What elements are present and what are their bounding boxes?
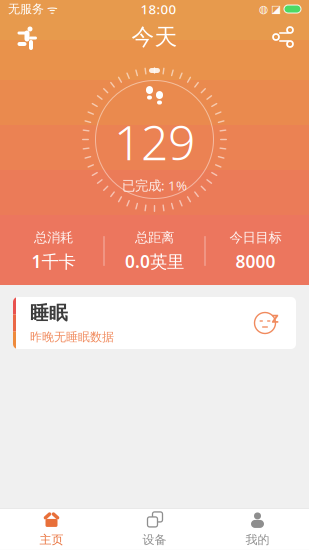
staticText: 1千卡 xyxy=(31,250,75,273)
staticText: 129 xyxy=(114,110,195,173)
staticText: 昨晚无睡眠数据 xyxy=(30,330,114,344)
staticText: z xyxy=(271,307,278,327)
button[interactable]: 我的 xyxy=(206,509,309,550)
staticText: 已完成: 1% xyxy=(122,176,187,194)
staticText: 总距离 xyxy=(135,229,174,246)
staticText: 无服务 xyxy=(8,2,44,16)
staticText: 18:00 xyxy=(140,0,176,18)
staticText: ᯤ xyxy=(44,1,58,17)
staticText: 今日目标 xyxy=(229,229,281,246)
button[interactable]: 睡眠 xyxy=(13,297,296,349)
staticText: 我的 xyxy=(245,532,269,547)
staticText: 主页 xyxy=(39,532,63,547)
button[interactable]: 分享 xyxy=(261,19,305,55)
staticText: 0.0英里 xyxy=(125,250,184,273)
button[interactable]: 主页 xyxy=(0,509,103,550)
staticText: 睡眠 xyxy=(30,302,68,325)
staticText: ◍ ◪ xyxy=(259,3,281,15)
staticText: 8000 xyxy=(235,250,275,273)
staticText: 设备 xyxy=(142,532,166,547)
staticText: 总消耗 xyxy=(34,229,73,246)
staticText: 今天 xyxy=(131,23,177,51)
button[interactable]: 设备 xyxy=(103,509,206,550)
button[interactable]: 跑步 xyxy=(4,19,48,55)
